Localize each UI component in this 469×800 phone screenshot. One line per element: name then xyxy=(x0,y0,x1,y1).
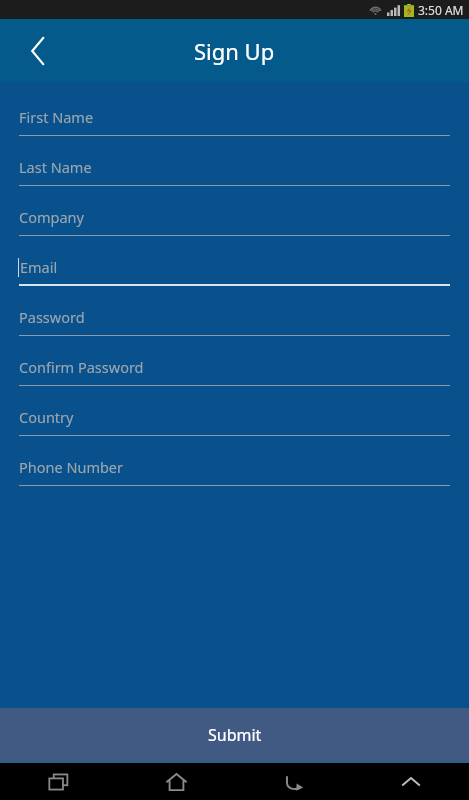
button[interactable]: Back xyxy=(0,19,76,82)
button[interactable]: Company xyxy=(0,199,469,249)
button[interactable]: Password xyxy=(0,299,469,349)
staticText: Submit xyxy=(208,724,262,746)
staticText: First Name xyxy=(19,107,94,127)
button[interactable]: Email xyxy=(0,249,469,299)
staticText: Sign Up xyxy=(194,36,275,66)
staticText: 3:50 AM xyxy=(418,2,464,18)
staticText: Confirm Password xyxy=(19,357,144,377)
button[interactable]: Expand xyxy=(352,763,469,800)
button[interactable]: Recent apps xyxy=(0,763,118,800)
staticText: Last Name xyxy=(19,157,92,177)
button[interactable]: Back xyxy=(235,763,352,800)
button[interactable]: First Name xyxy=(0,99,469,149)
button[interactable]: Phone Number xyxy=(0,449,469,499)
button[interactable]: Country xyxy=(0,399,469,449)
staticText: Phone Number xyxy=(19,457,124,477)
staticText: Company xyxy=(19,207,84,227)
button[interactable]: Last Name xyxy=(0,149,469,199)
button[interactable]: Confirm Password xyxy=(0,349,469,399)
staticText: Password xyxy=(19,307,85,327)
staticText: Email xyxy=(20,257,58,277)
button[interactable]: Submit xyxy=(0,708,469,761)
button[interactable]: Home xyxy=(118,763,235,800)
staticText: Country xyxy=(19,407,74,427)
